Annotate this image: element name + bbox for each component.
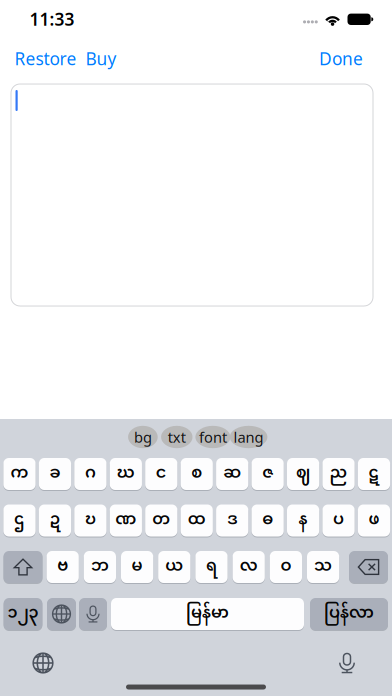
- staticText: ဂ: [85, 456, 96, 491]
- staticText: ဓ: [262, 503, 273, 538]
- staticText: Buy: [85, 47, 116, 70]
- staticText: ဏ: [115, 503, 136, 538]
- button[interactable]: ထ: [181, 504, 213, 537]
- button[interactable]: ဈ: [287, 457, 319, 490]
- button[interactable]: ဏ: [110, 504, 142, 537]
- button[interactable]: ဎ: [74, 504, 106, 537]
- staticText: ည: [330, 456, 348, 491]
- button[interactable]: Shift: [3, 550, 42, 583]
- button[interactable]: ဓ: [252, 504, 284, 537]
- button[interactable]: ဒ: [216, 504, 248, 537]
- button[interactable]: ပ: [322, 504, 355, 537]
- button[interactable]: ဝ: [270, 550, 302, 583]
- button[interactable]: ဘ: [84, 550, 116, 583]
- staticText: ဃ: [117, 456, 135, 491]
- button[interactable]: Buy: [85, 45, 116, 71]
- button[interactable]: ဆ: [216, 457, 248, 490]
- button[interactable]: မြန်မာ: [111, 597, 304, 630]
- staticText: Restore: [14, 47, 76, 70]
- staticText: ပြန်လာ: [324, 596, 374, 631]
- button[interactable]: ဇ: [252, 457, 284, 490]
- staticText: ရ: [206, 549, 217, 584]
- staticText: ထ: [188, 503, 206, 538]
- button[interactable]: င: [145, 457, 177, 490]
- staticText: txt: [168, 427, 186, 447]
- staticText: န: [299, 503, 308, 538]
- staticText: ဋ: [368, 456, 379, 491]
- staticText: ဌ: [14, 503, 25, 538]
- button[interactable]: သ: [307, 550, 339, 583]
- staticText: ဍ: [49, 503, 60, 538]
- staticText: ဖ: [368, 503, 379, 538]
- button[interactable]: စ: [181, 457, 213, 490]
- staticText: က: [10, 456, 28, 491]
- button[interactable]: တ: [145, 504, 177, 537]
- button[interactable]: ဌ: [3, 504, 36, 537]
- button[interactable]: ခ: [39, 457, 71, 490]
- button[interactable]: လ: [233, 550, 265, 583]
- staticText: bg: [134, 427, 152, 447]
- button[interactable]: Restore: [14, 45, 76, 71]
- staticText: ဗ: [57, 549, 68, 584]
- button[interactable]: Emoji keyboard: [23, 645, 63, 681]
- button[interactable]: Dictation: [327, 645, 367, 681]
- staticText: လ: [240, 549, 258, 584]
- staticText: ဈ: [296, 456, 310, 491]
- button[interactable]: ပြန်လာ: [310, 597, 388, 630]
- staticText: ဒ: [227, 503, 237, 538]
- staticText: မြန်မာ: [186, 596, 229, 631]
- staticText: မ: [132, 549, 143, 584]
- staticText: ဎ: [85, 503, 96, 538]
- staticText: သ: [314, 549, 332, 584]
- staticText: ဝ: [280, 549, 291, 584]
- button[interactable]: က: [3, 457, 36, 490]
- button[interactable]: ဂ: [74, 457, 106, 490]
- staticText: ပ: [333, 503, 344, 538]
- staticText: တ: [152, 503, 170, 538]
- staticText: ယ: [165, 549, 183, 584]
- button[interactable]: Next keyboard: [47, 597, 76, 630]
- button[interactable]: ၁၂၃: [4, 597, 42, 630]
- staticText: ခ: [49, 456, 60, 491]
- staticText: Done: [319, 47, 363, 70]
- staticText: ၁၂၃: [7, 596, 38, 631]
- button[interactable]: ဍ: [39, 504, 71, 537]
- button[interactable]: Done: [319, 45, 363, 71]
- staticText: ဘ: [91, 549, 109, 584]
- button[interactable]: န: [287, 504, 319, 537]
- button[interactable]: ရ: [195, 550, 228, 583]
- button[interactable]: ဋ: [358, 457, 390, 490]
- staticText: စ: [191, 456, 202, 491]
- staticText: font: [199, 427, 227, 447]
- button[interactable]: Delete: [349, 550, 388, 583]
- button[interactable]: ဃ: [110, 457, 142, 490]
- button[interactable]: ည: [322, 457, 355, 490]
- button[interactable]: ယ: [158, 550, 190, 583]
- button[interactable]: ဗ: [47, 550, 79, 583]
- button[interactable]: မ: [121, 550, 153, 583]
- staticText: င: [156, 456, 167, 491]
- staticText: ဆ: [223, 456, 241, 491]
- staticText: lang: [234, 427, 264, 447]
- button[interactable]: Dictation: [79, 597, 107, 630]
- button[interactable]: ဖ: [358, 504, 390, 537]
- staticText: ဇ: [262, 456, 273, 491]
- staticText: 11:33: [29, 7, 74, 30]
